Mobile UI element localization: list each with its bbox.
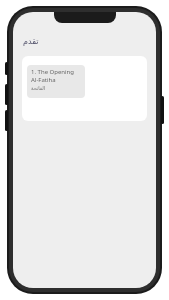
staticText: 1. The Opening — [31, 68, 75, 76]
staticText: الفاتحة — [31, 85, 46, 91]
button[interactable]: 1. The Opening — [27, 65, 85, 98]
button[interactable]: 1. The Opening — [22, 56, 147, 121]
staticText: Al-Fatiha — [31, 76, 56, 84]
button[interactable]: تقدم — [22, 36, 40, 47]
staticText: تقدم — [23, 37, 39, 46]
